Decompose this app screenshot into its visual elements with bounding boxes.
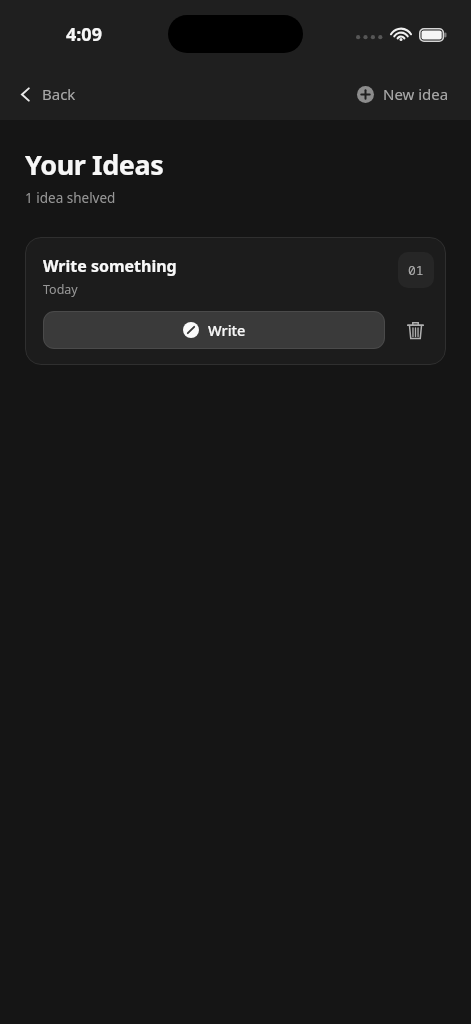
button[interactable]: Back (0, 76, 90, 112)
staticText: Today (43, 281, 78, 298)
button[interactable]: Write something (25, 237, 446, 365)
staticText: New idea (383, 84, 449, 104)
staticText: 01 (408, 261, 424, 279)
staticText: Back (42, 84, 76, 104)
staticText: 4:09 (66, 22, 102, 47)
button[interactable]: Write (43, 311, 385, 349)
button[interactable]: Delete idea (396, 311, 434, 349)
staticText: Write (208, 320, 246, 340)
staticText: Write something (43, 255, 177, 277)
staticText: 1 idea shelved (25, 189, 116, 207)
staticText: Your Ideas (25, 146, 164, 183)
button[interactable]: New idea (343, 76, 471, 112)
